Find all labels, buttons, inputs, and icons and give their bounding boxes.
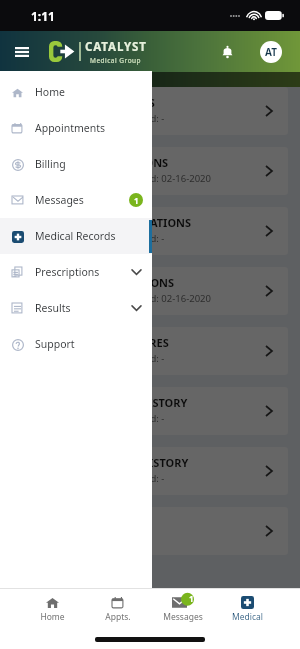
staticText: Last Updated: - <box>97 352 165 365</box>
staticText: Last Updated: - <box>97 472 165 485</box>
staticText: CONDITIONS <box>97 155 169 170</box>
button[interactable]: SOCIAL HISTORY <box>12 387 288 435</box>
staticText: Home <box>40 611 65 623</box>
staticText: Appts. <box>105 611 131 623</box>
button[interactable]: Support <box>0 326 152 362</box>
button[interactable]: Home <box>0 74 152 110</box>
button[interactable]: IMMUNIZATIONS <box>12 207 288 255</box>
button[interactable]: Messages <box>0 182 152 218</box>
staticText: SOCIAL HISTORY <box>97 395 188 410</box>
button[interactable]: MEDICATIONS <box>12 267 288 315</box>
staticText: Medical <box>232 611 263 623</box>
staticText: Last Updated: - <box>97 412 165 425</box>
staticText: 1:11 <box>31 8 55 24</box>
staticText: FAMILY HISTORY <box>97 455 189 470</box>
staticText: Prescriptions <box>35 265 100 279</box>
button[interactable]: Appointments <box>0 110 152 146</box>
staticText: PROCEDURES <box>97 335 169 350</box>
button[interactable]: 1 <box>150 593 215 625</box>
button[interactable]: Medical Records <box>0 218 152 254</box>
button[interactable]: Notifications <box>214 39 240 65</box>
button[interactable]: ALLERGIES <box>12 87 288 135</box>
staticText: Appointments <box>35 121 106 135</box>
staticText: Medical Records <box>35 229 116 243</box>
staticText: Billing <box>35 157 66 171</box>
staticText: Last Updated: 02-16-2020 <box>97 292 211 305</box>
staticText: Messages <box>163 611 203 623</box>
staticText: 1 <box>189 593 194 604</box>
staticText: Last Updated: - <box>97 112 165 125</box>
staticText: Medical Group <box>90 56 142 65</box>
button[interactable]: FAMILY HISTORY <box>12 447 288 495</box>
button[interactable]: CONDITIONS <box>12 147 288 195</box>
button[interactable]: Open navigation drawer <box>8 38 35 65</box>
staticText: IMMUNIZATIONS <box>97 215 192 230</box>
button[interactable]: Medical <box>215 593 280 625</box>
staticText: Last Updated: - <box>97 232 165 245</box>
staticText: Home <box>35 85 65 99</box>
staticText: Last Updated: 02-16-2020 <box>97 172 211 185</box>
button[interactable]: Billing <box>0 146 152 182</box>
button[interactable]: AT <box>260 41 282 63</box>
button[interactable]: Appts. <box>85 593 150 625</box>
button[interactable]: Prescriptions <box>0 254 152 290</box>
staticText: Support <box>35 337 75 351</box>
staticText: ALLERGIES <box>97 95 155 110</box>
staticText: Messages <box>35 193 84 207</box>
button[interactable]: PROCEDURES <box>12 327 288 375</box>
staticText: MEDICATIONS <box>97 275 175 290</box>
staticText: AT <box>265 45 277 59</box>
button[interactable]: Results <box>0 290 152 326</box>
button[interactable]: Home <box>20 593 85 625</box>
button[interactable] <box>12 507 288 555</box>
staticText: CATALYST <box>85 39 147 55</box>
staticText: Results <box>35 301 71 315</box>
staticText: 1 <box>134 195 139 206</box>
